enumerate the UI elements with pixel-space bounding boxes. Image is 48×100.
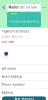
button[interactable]: Change [0,45,48,65]
staticText: Payment methods [2,30,29,33]
staticText: ADD NEW [2,40,15,43]
staticText: Full name [2,67,17,70]
staticText: Wallet [9,6,19,9]
staticText: Address [2,91,13,94]
button[interactable]: Email address [0,73,48,81]
button[interactable]: Back [1,4,7,11]
button[interactable]: Phone number [0,81,48,89]
staticText: Linked accounts [2,35,23,38]
staticText: card overview [20,6,37,9]
staticText: Save changes [14,97,33,100]
staticText: Change [3,56,9,58]
button[interactable]: Full name [0,65,48,73]
staticText: Phone number [2,83,25,86]
staticText: Email address [2,75,22,78]
button[interactable]: More options [41,4,47,11]
staticText: ACTIVE [11,13,17,15]
button[interactable]: Save changes [2,96,46,100]
staticText: Premium membership [9,20,39,23]
